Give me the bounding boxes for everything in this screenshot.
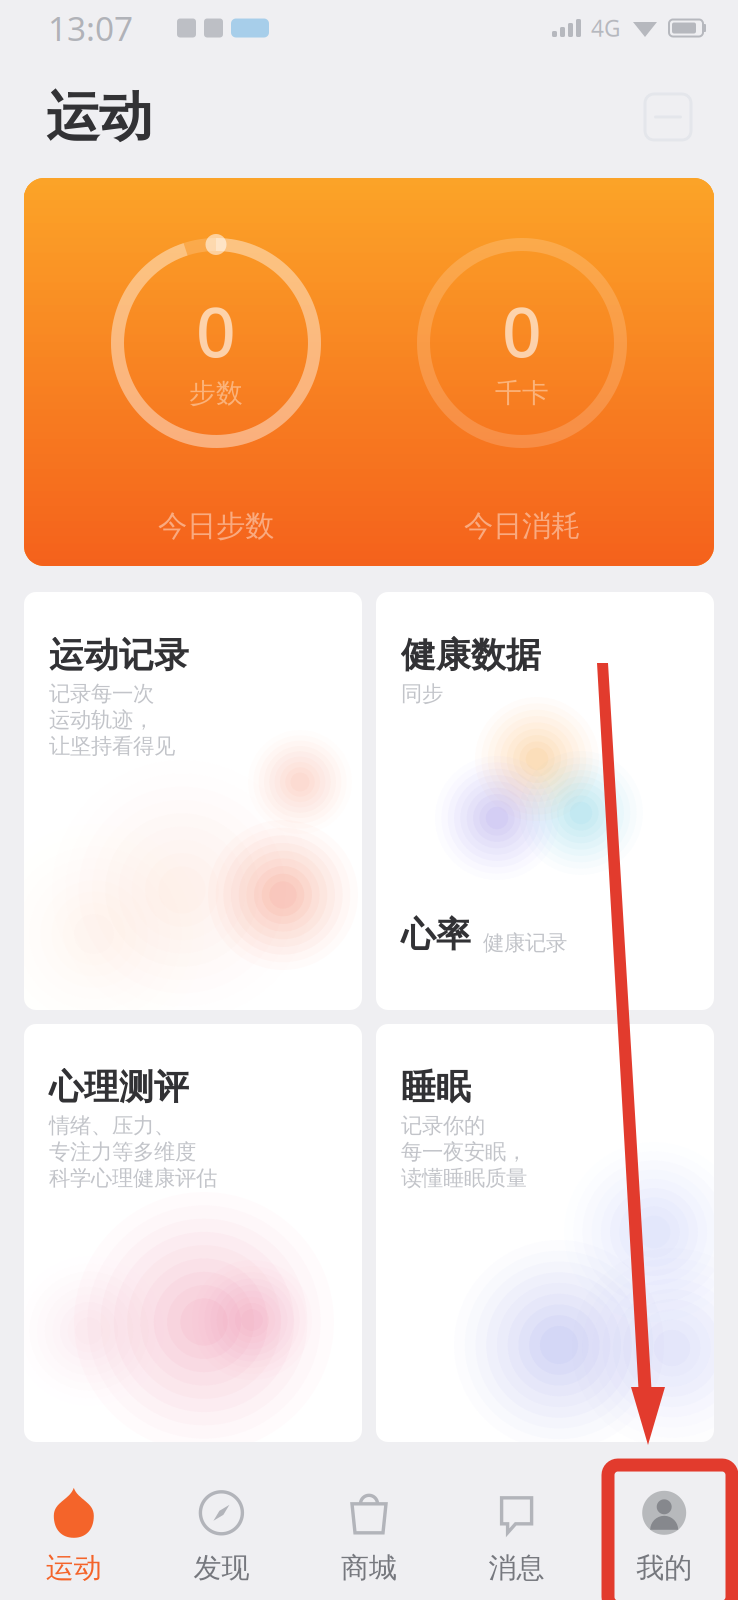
staticText: 运动轨迹， [49,707,154,733]
staticText: 健康数据 [401,634,541,677]
staticText: 0 [196,285,236,377]
staticText: 运动 [46,84,152,150]
staticText: 0 [502,285,542,377]
staticText: 运动记录 [49,634,189,677]
staticText: 让坚持看得见 [49,733,175,759]
staticText: 今日步数 [158,508,274,544]
button[interactable]: 0 [369,226,675,556]
staticText: 千卡 [495,377,549,409]
button[interactable]: 我的 [590,1460,738,1598]
staticText: 商城 [341,1551,397,1585]
button[interactable]: 心理测评 [24,1024,362,1442]
button[interactable]: 0 [24,178,714,566]
button[interactable]: 消息 [443,1460,590,1598]
staticText: 读懂睡眠质量 [401,1165,527,1191]
staticText: 我的 [636,1551,692,1585]
staticText: 今日消耗 [464,508,580,544]
button[interactable]: 发现 [148,1460,295,1598]
button[interactable]: 扫一扫 [642,91,694,143]
staticText: 情绪、压力、 [49,1113,175,1139]
staticText: 睡眠 [401,1066,471,1109]
button[interactable]: 运动 [0,1460,148,1598]
staticText: 4G [591,13,621,43]
staticText: 运动 [46,1551,102,1585]
button[interactable]: 健康数据 [376,592,714,1010]
staticText: 消息 [489,1551,545,1585]
button[interactable]: 运动记录 [24,592,362,1010]
staticText: 专注力等多维度 [49,1139,196,1165]
staticText: 记录每一次 [49,681,154,707]
staticText: 同步 [401,681,443,707]
button[interactable]: 0 [63,226,369,556]
staticText: 科学心理健康评估 [49,1165,217,1191]
button[interactable]: 睡眠 [376,1024,714,1442]
staticText: 健康记录 [483,930,567,956]
staticText: 心率 [401,913,471,956]
staticText: 发现 [193,1551,249,1585]
staticText: 步数 [189,377,243,409]
staticText: 心理测评 [49,1066,189,1109]
staticText: 13:07 [48,6,133,50]
staticText: 记录你的 [401,1113,485,1139]
button[interactable]: 商城 [295,1460,443,1598]
staticText: 每一夜安眠， [401,1139,527,1165]
